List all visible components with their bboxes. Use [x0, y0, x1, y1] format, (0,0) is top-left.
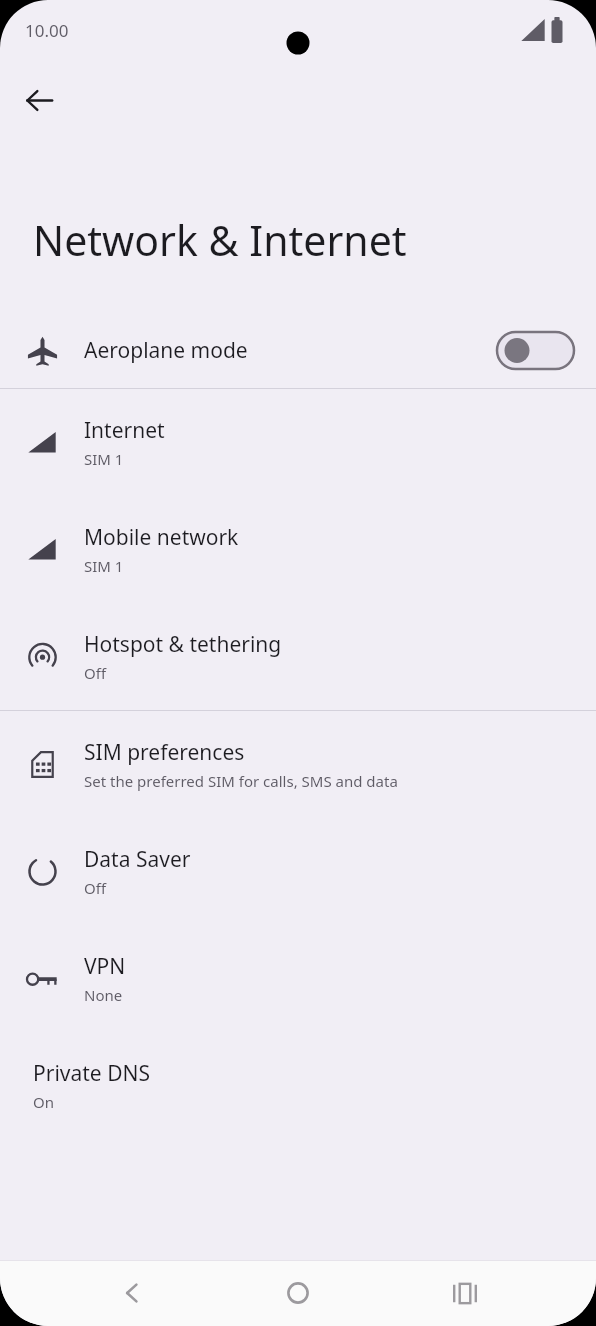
staticText: Data Saver: [84, 845, 191, 874]
staticText: Internet: [84, 416, 165, 445]
staticText: Network & Internet: [33, 212, 407, 268]
staticText: SIM 1: [84, 449, 124, 469]
staticText: On: [33, 1092, 54, 1112]
staticText: Private DNS: [33, 1059, 150, 1088]
button[interactable]: VPN: [0, 925, 596, 1032]
staticText: VPN: [84, 952, 126, 981]
button[interactable]: Back: [97, 1260, 167, 1326]
staticText: 10.00: [25, 19, 69, 42]
staticText: Off: [84, 878, 107, 898]
button[interactable]: Private DNS: [0, 1032, 596, 1139]
button[interactable]: Hotspot & tethering: [0, 603, 596, 710]
button[interactable]: Data Saver: [0, 818, 596, 925]
button[interactable]: Aeroplane mode: [0, 312, 596, 388]
button[interactable]: Back: [15, 76, 63, 124]
button[interactable]: Home: [263, 1260, 333, 1326]
button[interactable]: Recent apps: [430, 1260, 500, 1326]
button[interactable]: SIM preferences: [0, 711, 596, 818]
staticText: SIM preferences: [84, 738, 245, 767]
staticText: Hotspot & tethering: [84, 630, 282, 659]
button[interactable]: Internet: [0, 389, 596, 496]
staticText: SIM 1: [84, 556, 124, 576]
staticText: Set the preferred SIM for calls, SMS and…: [84, 771, 398, 791]
button[interactable]: Mobile network: [0, 496, 596, 603]
staticText: Aeroplane mode: [84, 336, 248, 365]
staticText: None: [84, 985, 123, 1005]
staticText: Mobile network: [84, 523, 239, 552]
staticText: Off: [84, 663, 107, 683]
